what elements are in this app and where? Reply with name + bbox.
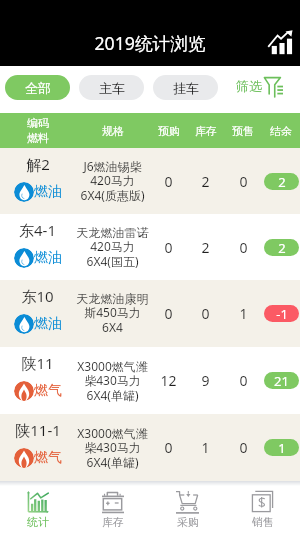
staticText: X3000燃气潍 柴430马力 6X4(单罐): [75, 358, 150, 404]
staticText: 0: [239, 371, 248, 390]
button[interactable]: 东10: [0, 280, 300, 347]
staticText: 主车: [99, 80, 125, 96]
staticText: 2: [201, 238, 210, 257]
button[interactable]: 挂车: [153, 75, 218, 100]
staticText: 库存: [102, 515, 124, 529]
staticText: 1: [278, 439, 286, 456]
staticText: 2: [201, 172, 210, 191]
button[interactable]: 全部: [5, 75, 70, 100]
staticText: 2019统计浏览: [94, 31, 206, 55]
button[interactable]: 采购: [150, 486, 225, 533]
staticText: 预购: [158, 124, 180, 138]
staticText: 销售: [252, 515, 274, 529]
button[interactable]: 陕11-1: [0, 414, 300, 481]
staticText: 9: [201, 371, 210, 390]
button[interactable]: 东4-1: [0, 214, 300, 280]
button[interactable]: 库存: [75, 486, 150, 533]
staticText: 全部: [25, 80, 51, 96]
staticText: 2: [278, 239, 286, 256]
button[interactable]: 主车: [79, 75, 144, 100]
staticText: 0: [164, 304, 173, 323]
staticText: 东10: [21, 286, 54, 306]
staticText: 0: [164, 238, 173, 257]
staticText: 燃油: [34, 183, 62, 201]
staticText: 结余: [270, 124, 292, 138]
staticText: 0: [164, 438, 173, 457]
staticText: 0: [239, 172, 248, 191]
staticText: X3000燃气潍 柴430马力 6X4(单罐): [75, 425, 150, 471]
staticText: 燃气: [34, 382, 62, 400]
staticText: 陕11: [21, 353, 54, 373]
staticText: 采购: [177, 515, 199, 529]
staticText: -1: [276, 305, 288, 322]
staticText: 库存: [195, 124, 217, 138]
staticText: 陕11-1: [15, 420, 61, 440]
staticText: 2: [278, 173, 286, 190]
button[interactable]: Statistics: [268, 30, 293, 55]
staticText: 预售: [232, 124, 254, 138]
staticText: 解2: [26, 154, 50, 174]
staticText: 0: [239, 438, 248, 457]
staticText: 0: [164, 172, 173, 191]
staticText: 挂车: [173, 80, 199, 96]
staticText: J6燃油锡柴 420马力 6X4(质惠版): [75, 158, 150, 204]
button[interactable]: 陕11: [0, 347, 300, 414]
staticText: 燃油: [34, 249, 62, 267]
staticText: 规格: [102, 124, 124, 138]
staticText: 21: [274, 372, 289, 389]
staticText: 筛选: [236, 78, 262, 94]
button[interactable]: 统计: [0, 486, 75, 533]
staticText: 1: [201, 438, 210, 457]
staticText: 编码: [27, 116, 49, 130]
staticText: 1: [239, 304, 248, 323]
staticText: 0: [201, 304, 210, 323]
button[interactable]: 销售: [225, 486, 300, 533]
staticText: 燃油: [34, 315, 62, 333]
staticText: 天龙燃油康明 斯450马力 6X4: [75, 291, 150, 336]
button[interactable]: 筛选: [231, 69, 288, 105]
staticText: 0: [239, 238, 248, 257]
staticText: 统计: [27, 515, 49, 529]
staticText: 天龙燃油雷诺 420马力 6X4(国五): [75, 225, 150, 270]
button[interactable]: 解2: [0, 148, 300, 214]
staticText: 燃气: [34, 449, 62, 467]
staticText: 12: [160, 371, 177, 390]
staticText: 燃料: [27, 131, 49, 145]
staticText: 东4-1: [19, 220, 56, 240]
